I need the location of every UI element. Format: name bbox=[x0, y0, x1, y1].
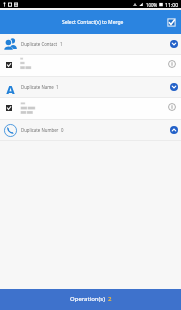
button[interactable]: A bbox=[0, 77, 181, 97]
button[interactable]: Select contact bbox=[6, 62, 12, 68]
button[interactable]: Select contact bbox=[6, 105, 12, 111]
button[interactable]: Select all bbox=[167, 18, 176, 27]
staticText: 0 bbox=[61, 127, 64, 133]
button[interactable]: Collapse bbox=[170, 126, 178, 134]
staticText: Operation(s) bbox=[70, 295, 106, 303]
button[interactable]: Info bbox=[168, 103, 176, 111]
staticText: 2 bbox=[108, 295, 112, 303]
staticText: 11:00 bbox=[165, 1, 179, 8]
button[interactable]: Duplicate Contact bbox=[0, 34, 181, 54]
button[interactable]: Operation(s) bbox=[0, 289, 181, 310]
button[interactable]: Select contact bbox=[0, 98, 181, 119]
button[interactable]: Expand bbox=[170, 40, 178, 48]
staticText: Duplicate Number bbox=[21, 127, 59, 133]
button[interactable]: Info bbox=[168, 60, 176, 68]
staticText: 1 bbox=[56, 84, 59, 90]
staticText: Duplicate Contact bbox=[21, 41, 58, 47]
staticText: A bbox=[6, 81, 15, 94]
staticText: Duplicate Name bbox=[21, 84, 54, 90]
button[interactable]: Select contact bbox=[0, 55, 181, 76]
staticText: 1 bbox=[60, 41, 63, 47]
staticText: 100% bbox=[146, 2, 158, 8]
staticText: Select Contact(s) to Merge bbox=[62, 19, 124, 26]
button[interactable]: Expand bbox=[170, 83, 178, 91]
button[interactable]: Duplicate Number bbox=[0, 120, 181, 140]
